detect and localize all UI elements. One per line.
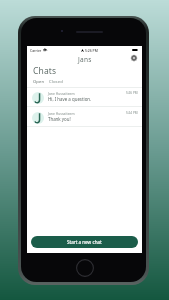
staticText: Chats	[33, 65, 57, 77]
staticText: Jane Hussaiteem	[48, 111, 75, 115]
staticText: 5:26 PM	[85, 48, 98, 53]
staticText: Open	[33, 79, 45, 85]
button[interactable]: Jane Hussaiteem	[27, 107, 142, 127]
staticText: Start a new chat	[67, 239, 102, 245]
button[interactable]: Start a new chat	[31, 236, 138, 248]
staticText: 5:26 PM	[126, 91, 138, 95]
staticText: Jane Hussaiteem	[48, 91, 75, 95]
staticText: Jans	[78, 55, 92, 64]
staticText: Hi, I have a question.	[48, 96, 92, 102]
button[interactable]: Settings	[128, 52, 139, 63]
button[interactable]: Open	[33, 79, 45, 88]
staticText: Thank you!	[48, 116, 71, 122]
staticText: 5:24 PM	[126, 111, 138, 115]
button[interactable]: Jane Hussaiteem	[27, 87, 142, 107]
button[interactable]: Closed	[49, 79, 63, 88]
staticText: Carrier	[30, 48, 42, 53]
staticText: Closed	[49, 79, 63, 85]
